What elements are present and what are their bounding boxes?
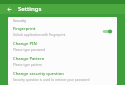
button[interactable]: Change security question: [8, 69, 117, 84]
staticText: Settings: [18, 5, 42, 13]
staticText: Change PIN: [13, 41, 37, 47]
staticText: Please type password: [13, 48, 46, 52]
button[interactable]: Change PIN: [8, 39, 117, 54]
staticText: Change Pattern: [13, 56, 45, 62]
staticText: Security question is used to retrieve yo…: [13, 78, 90, 82]
staticText: Security: [13, 18, 27, 23]
staticText: Change security question: [13, 71, 64, 77]
staticText: Unlock application with Fingerprint: [13, 33, 66, 37]
button[interactable]: Toggle on: [101, 28, 113, 35]
staticText: Fingerprint: [13, 26, 36, 32]
button[interactable]: Back: [5, 5, 13, 13]
staticText: Please type pattern: [13, 63, 42, 67]
button[interactable]: Change Pattern: [8, 54, 117, 69]
button[interactable]: Fingerprint: [8, 24, 117, 39]
